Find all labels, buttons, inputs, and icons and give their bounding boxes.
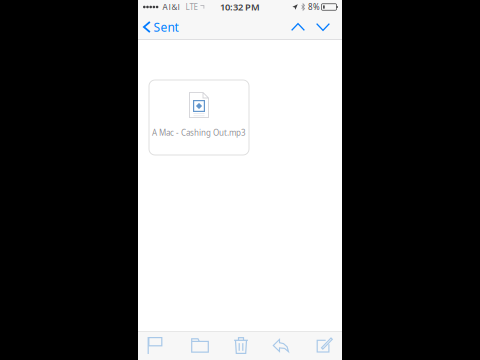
staticText: A Mac - Cashing Out.mp3	[152, 127, 246, 138]
button[interactable]: A Mac - Cashing Out.mp3	[149, 80, 249, 155]
button[interactable]: Sent	[142, 14, 183, 40]
button[interactable]: Flag	[138, 331, 172, 359]
staticText: LTE	[185, 2, 197, 12]
button[interactable]: Next message	[307, 14, 338, 40]
staticText: AT&T	[162, 2, 180, 12]
button[interactable]: Move to folder	[172, 331, 228, 359]
staticText: 8%	[308, 2, 320, 12]
button[interactable]: Previous message	[281, 14, 307, 40]
button[interactable]: Delete	[228, 331, 254, 359]
button[interactable]: Reply	[254, 331, 308, 359]
staticText: 10:32 PM	[220, 1, 260, 13]
staticText: Sent	[153, 19, 178, 35]
button[interactable]: Compose	[308, 331, 342, 359]
